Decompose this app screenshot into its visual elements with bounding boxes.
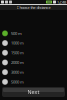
staticText: 3000 m (11, 69, 24, 75)
button[interactable]: Next (2, 87, 65, 97)
staticText: 12:48 (57, 0, 66, 5)
button[interactable]: 3000 m (0, 67, 67, 77)
button[interactable]: 1500 m (0, 48, 67, 58)
button[interactable]: 500 m (0, 28, 67, 38)
button[interactable]: 5000 m (0, 77, 67, 87)
staticText: Choose the distance (16, 5, 50, 10)
staticText: 500 m (11, 31, 22, 36)
staticText: Next (27, 88, 39, 96)
staticText: 1500 m (11, 50, 24, 55)
staticText: 5000 m (11, 79, 24, 84)
staticText: 1000 m (11, 40, 24, 46)
staticText: 2000 m (11, 60, 24, 65)
button[interactable]: 1000 m (0, 38, 67, 48)
button[interactable]: 2000 m (0, 58, 67, 67)
